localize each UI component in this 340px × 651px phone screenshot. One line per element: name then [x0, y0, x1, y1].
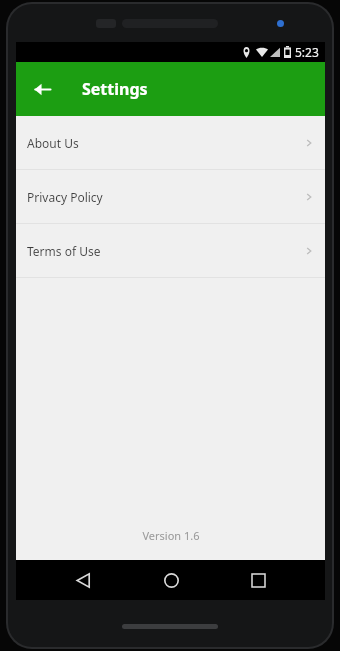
staticText: Settings: [82, 78, 148, 100]
button[interactable]: Privacy Policy: [16, 170, 325, 223]
button[interactable]: Back: [22, 69, 62, 109]
staticText: Terms of Use: [27, 243, 304, 259]
staticText: About Us: [27, 135, 304, 151]
staticText: 5:23: [295, 44, 319, 60]
button[interactable]: Terms of Use: [16, 224, 325, 277]
button[interactable]: Back: [63, 560, 103, 600]
button[interactable]: Home: [151, 560, 191, 600]
button[interactable]: About Us: [16, 116, 325, 169]
staticText: Privacy Policy: [27, 189, 304, 205]
button[interactable]: Recent apps: [238, 560, 278, 600]
staticText: Version 1.6: [142, 528, 200, 543]
